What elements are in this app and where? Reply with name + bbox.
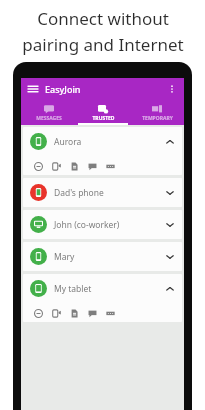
- staticText: pairing and Internet: [22, 33, 184, 56]
- button[interactable]: Mary: [23, 242, 182, 271]
- button[interactable]: Send screen: [47, 304, 65, 322]
- button[interactable]: Send file: [65, 304, 83, 322]
- button[interactable]: Open navigation drawer: [26, 82, 40, 96]
- button[interactable]: My tablet: [23, 274, 182, 322]
- staticText: Mary: [54, 251, 75, 263]
- button[interactable]: Send SMS: [101, 304, 119, 322]
- button[interactable]: John (co-worker): [23, 210, 182, 239]
- button[interactable]: Send SMS: [101, 157, 119, 175]
- staticText: TRUSTED: [92, 115, 115, 122]
- button[interactable]: Send file: [65, 157, 83, 175]
- button[interactable]: Aurora: [23, 127, 182, 175]
- staticText: My tablet: [54, 283, 92, 295]
- staticText: Connect without: [37, 7, 169, 30]
- staticText: EasyJoin: [45, 83, 81, 95]
- button[interactable]: TRUSTED: [76, 100, 130, 125]
- button[interactable]: MESSAGES: [21, 100, 76, 125]
- staticText: Aurora: [54, 136, 82, 148]
- button[interactable]: Send screen: [47, 157, 65, 175]
- staticText: TEMPORARY: [142, 115, 173, 122]
- button[interactable]: Send message: [83, 157, 101, 175]
- staticText: MESSAGES: [36, 115, 62, 122]
- staticText: Dad's phone: [54, 187, 104, 199]
- button[interactable]: Send message: [83, 304, 101, 322]
- button[interactable]: Block device: [29, 304, 47, 322]
- button[interactable]: More options: [165, 82, 179, 96]
- button[interactable]: Dad's phone: [23, 178, 182, 207]
- staticText: John (co-worker): [54, 219, 120, 231]
- button[interactable]: Block device: [29, 157, 47, 175]
- button[interactable]: TEMPORARY: [130, 100, 184, 125]
